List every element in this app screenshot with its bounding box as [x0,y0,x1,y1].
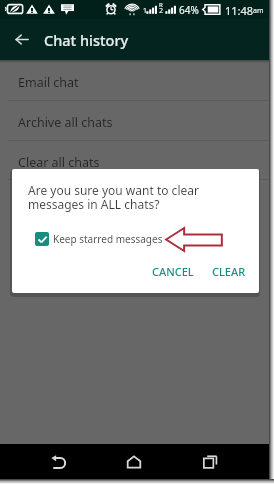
staticText: Archive all chats [18,114,113,131]
button[interactable]: Back [0,19,44,60]
button[interactable]: Archive all chats [0,101,269,141]
button[interactable]: CANCEL [145,259,201,284]
staticText: 64% [179,3,199,17]
button[interactable]: CLEAR [205,259,253,284]
staticText: am [253,6,264,16]
staticText: R [159,1,163,9]
button[interactable]: Recent apps [193,445,227,479]
button[interactable]: Home [117,445,151,479]
staticText: Chat history [44,30,129,50]
staticText: 2 [159,6,164,16]
staticText: Keep starred messages [53,232,163,246]
button[interactable]: Email chat [0,61,269,101]
button[interactable]: Clear all chats [0,141,269,180]
staticText: CLEAR [212,264,246,279]
staticText: Clear all chats [18,154,100,171]
staticText: Email chat [18,74,79,91]
button[interactable]: Keep starred messages [12,232,259,246]
button[interactable]: Back [41,445,75,479]
staticText: Are you sure you want to clear messages … [28,182,239,212]
staticText: CANCEL [152,264,194,279]
staticText: 1 [143,6,148,16]
staticText: 11:48 [225,3,254,18]
